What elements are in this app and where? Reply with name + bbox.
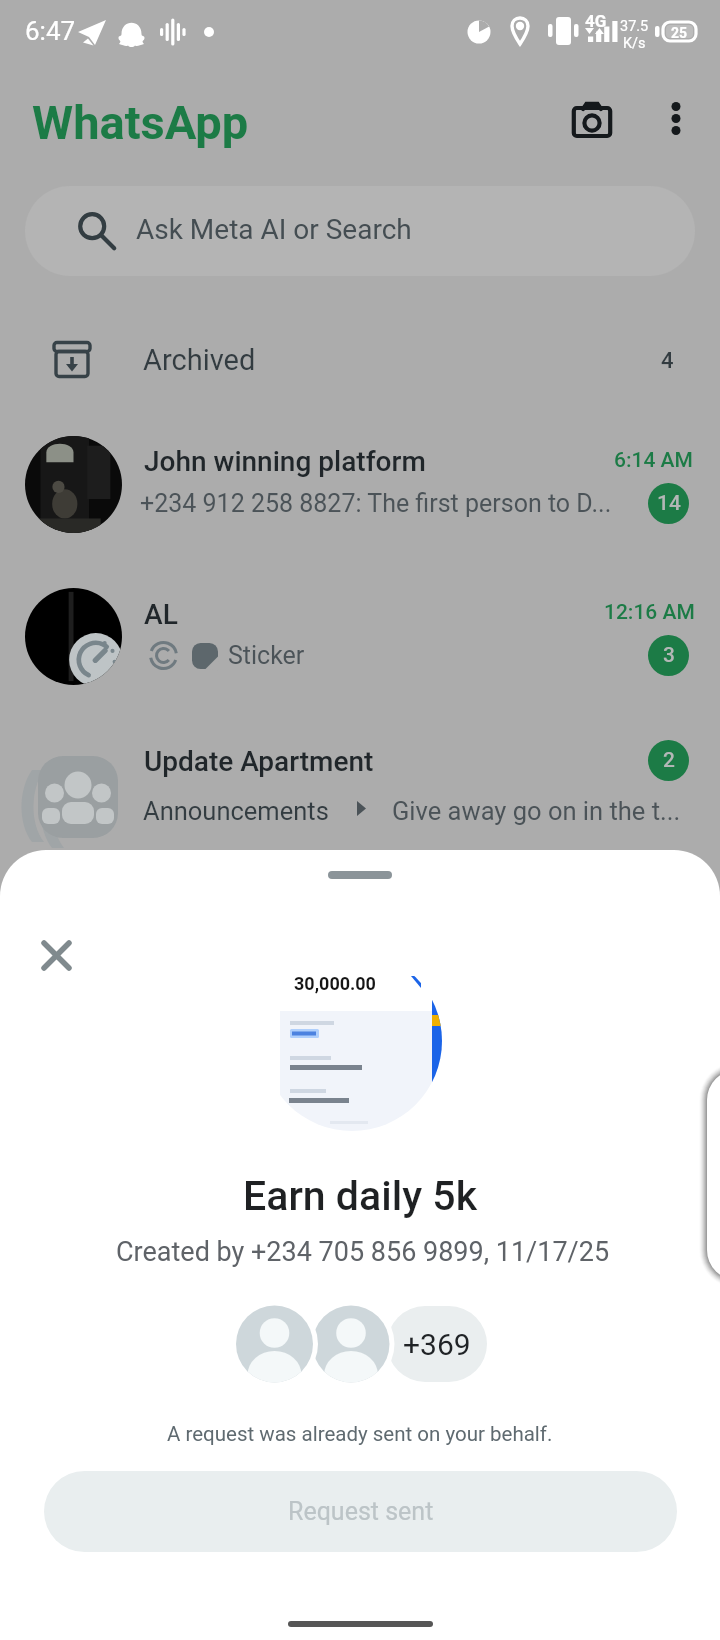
staticText: Earn daily 5k	[243, 1172, 478, 1220]
staticText: Request sent	[288, 1497, 434, 1526]
staticText: 25	[671, 25, 688, 38]
staticText: +234 912 258 8827: The first person to D…	[140, 489, 618, 518]
button[interactable]: John winning platform	[0, 420, 720, 572]
staticText: A request was already sent on your behal…	[167, 1422, 553, 1446]
staticText: 4G	[585, 11, 607, 31]
staticText: Announcements	[143, 796, 329, 826]
staticText: +369	[403, 1327, 471, 1362]
button[interactable]: Archived	[0, 300, 720, 420]
staticText: 30,000.00	[294, 973, 376, 994]
staticText: 4	[661, 348, 674, 374]
button[interactable]: Camera	[560, 88, 624, 152]
staticText: WhatsApp	[32, 95, 249, 150]
staticText: Sticker	[228, 641, 305, 670]
button[interactable]: Ask Meta AI or Search	[25, 186, 695, 276]
staticText: 14	[657, 491, 681, 516]
staticText: Ask Meta AI or Search	[136, 213, 412, 246]
staticText: 6:14 AM	[614, 448, 693, 473]
staticText: 6:47	[25, 16, 76, 46]
staticText: 2	[663, 748, 675, 773]
button[interactable]: More options	[646, 88, 706, 148]
staticText: 3	[663, 643, 675, 668]
staticText: Update Apartment	[144, 745, 374, 778]
button[interactable]: AL	[0, 572, 720, 724]
button[interactable]: Update Apartment	[0, 724, 720, 876]
button[interactable]: +369	[387, 1306, 487, 1382]
staticText: John winning platform	[144, 445, 426, 478]
staticText: Created by +234 705 856 9899, 11/17/25	[116, 1236, 610, 1268]
staticText: Archived	[143, 343, 256, 377]
staticText: 37.5	[620, 18, 649, 35]
staticText: K/s	[623, 35, 646, 52]
button[interactable]: Close	[26, 925, 86, 985]
staticText: 12:16 AM	[604, 600, 695, 625]
staticText: AL	[144, 598, 178, 631]
staticText: Give away go on in the t...	[392, 796, 692, 826]
button[interactable]: Request sent	[44, 1471, 677, 1552]
